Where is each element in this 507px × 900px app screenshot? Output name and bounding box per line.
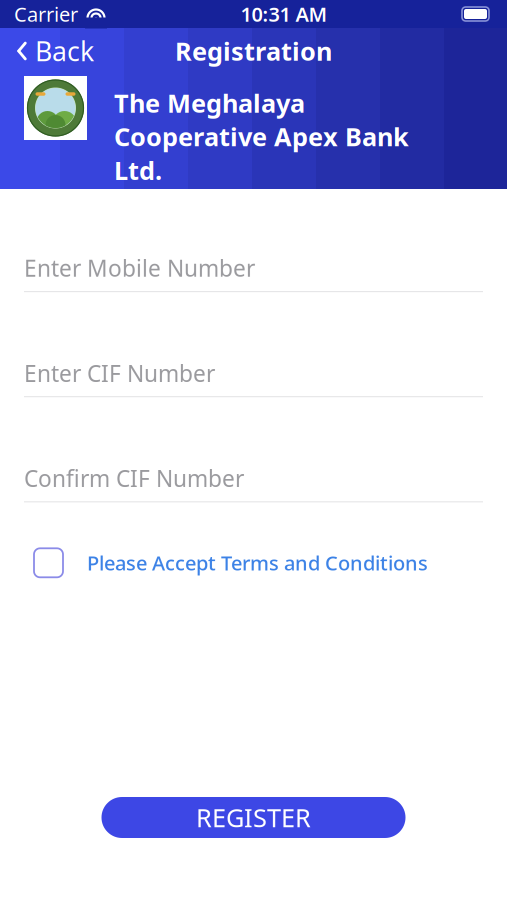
- staticText: Back: [35, 33, 94, 69]
- staticText: Registration: [175, 34, 332, 68]
- staticText: REGISTER: [196, 801, 311, 834]
- staticText: Confirm CIF Number: [24, 463, 244, 493]
- staticText: The Meghalaya Cooperative Apex Bank Ltd.: [114, 86, 409, 187]
- button[interactable]: Accept Terms and Conditions checkbox: [34, 548, 63, 577]
- staticText: 10:31 AM: [240, 1, 327, 27]
- button[interactable]: Back: [0, 28, 106, 74]
- staticText: Enter CIF Number: [24, 358, 215, 388]
- staticText: Enter Mobile Number: [24, 253, 255, 283]
- staticText: Carrier: [14, 1, 78, 27]
- staticText: Please Accept Terms and Conditions: [87, 549, 428, 576]
- button[interactable]: Please Accept Terms and Conditions: [63, 548, 428, 577]
- button[interactable]: REGISTER: [101, 797, 405, 838]
